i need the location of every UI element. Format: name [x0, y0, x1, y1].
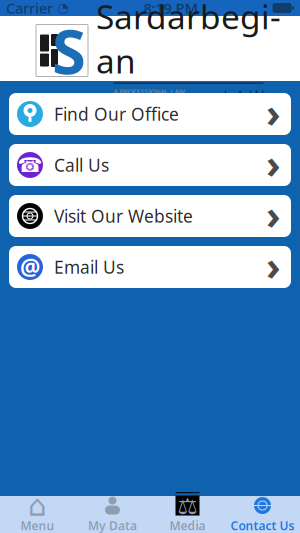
- staticText: ›: [266, 238, 281, 291]
- button[interactable]: Find Our Office: [9, 93, 291, 135]
- button[interactable]: My Data: [75, 496, 150, 533]
- staticText: Email Us: [54, 255, 124, 278]
- staticText: Visit Our Website: [54, 204, 193, 227]
- staticText: Find Our Office: [54, 102, 179, 125]
- staticText: L A W: [223, 86, 263, 107]
- staticText: Call Us: [54, 153, 109, 176]
- staticText: Menu: [20, 517, 54, 533]
- staticText: @: [20, 252, 40, 282]
- staticText: Carrier: [6, 0, 53, 18]
- staticText: ›: [266, 187, 281, 240]
- staticText: ›: [266, 136, 281, 189]
- staticText: S: [52, 10, 86, 91]
- button[interactable]: ⌂: [0, 496, 75, 533]
- staticText: Contact Us: [230, 517, 294, 533]
- staticText: ›: [266, 85, 281, 138]
- button[interactable]: @: [9, 246, 291, 288]
- button[interactable]: Contact Us: [225, 496, 300, 533]
- staticText: My Data: [88, 517, 137, 533]
- button[interactable]: ⚖: [150, 496, 225, 533]
- staticText: 8:19 PM: [143, 0, 198, 18]
- staticText: ☎: [17, 154, 42, 176]
- staticText: A PROFESSIONAL LAW CORPORATION: [113, 87, 184, 105]
- button[interactable]: Visit Our Website: [9, 195, 291, 237]
- staticText: ◔: [57, 0, 69, 15]
- staticText: Sardarbegian: [96, 0, 281, 83]
- staticText: Media: [169, 517, 205, 533]
- staticText: ⚖: [177, 493, 197, 519]
- staticText: ⌂: [28, 489, 47, 522]
- button[interactable]: ☎: [9, 144, 291, 186]
